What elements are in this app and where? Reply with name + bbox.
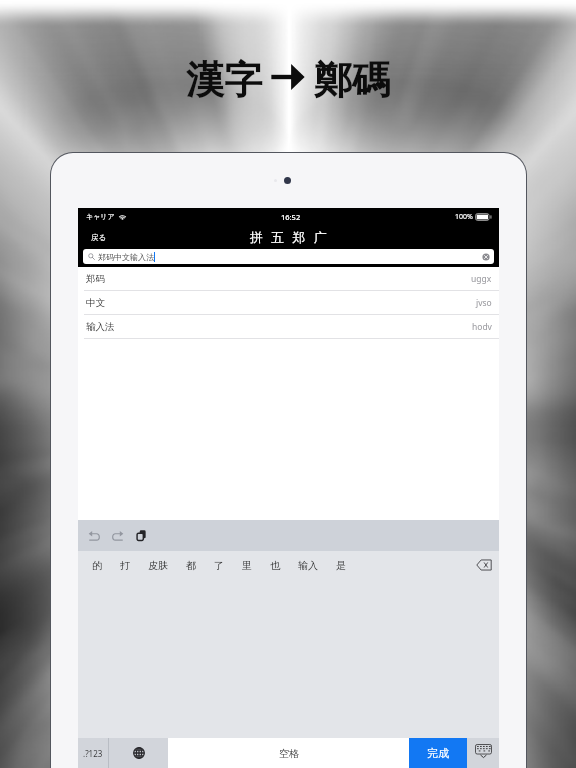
staticText: 的 [92, 559, 102, 572]
staticText: 是 [336, 559, 346, 572]
button[interactable]: 都 [177, 556, 205, 575]
button[interactable]: 完成 [409, 738, 467, 768]
button[interactable]: .?123 [78, 738, 108, 768]
button[interactable]: 空格 [168, 738, 409, 768]
staticText: 完成 [427, 746, 449, 760]
button[interactable]: 输入法 [78, 315, 499, 339]
staticText: .?123 [83, 748, 103, 759]
staticText: 中文 [86, 297, 105, 309]
staticText: 里 [242, 559, 252, 572]
staticText: uggx [471, 273, 492, 285]
staticText: 郑码 [86, 273, 105, 285]
button[interactable]: Clear text [482, 253, 490, 261]
staticText: hodv [472, 321, 492, 333]
button[interactable]: Backspace [476, 559, 492, 571]
staticText: 鄭碼 [314, 56, 390, 104]
button[interactable]: 皮肤 [139, 556, 177, 575]
staticText: 打 [120, 559, 130, 572]
staticText: 拼 五 郑 广 [250, 228, 328, 246]
staticText: キャリア [86, 212, 115, 221]
button[interactable]: 也 [261, 556, 289, 575]
button[interactable]: 中文 [78, 291, 499, 315]
staticText: 100% [455, 212, 473, 222]
staticText: 漢字 [186, 56, 262, 104]
staticText: 也 [270, 559, 280, 572]
button[interactable]: 是 [327, 556, 355, 575]
staticText: 16:52 [281, 212, 301, 222]
button[interactable]: 戻る [86, 230, 112, 245]
staticText: 都 [186, 559, 196, 572]
button[interactable]: Undo [87, 529, 101, 543]
staticText: 了 [214, 559, 224, 572]
button[interactable]: Redo [111, 529, 125, 543]
staticText: 输入法 [86, 321, 115, 333]
staticText: jvso [476, 297, 492, 309]
staticText: 输入 [298, 559, 318, 572]
button[interactable]: 里 [233, 556, 261, 575]
button[interactable]: 打 [111, 556, 139, 575]
staticText: 空格 [279, 747, 299, 760]
staticText: 戻る [91, 233, 107, 242]
button[interactable]: Hide keyboard [467, 738, 499, 768]
staticText: 郑码中文输入法 [98, 252, 154, 262]
staticText: 皮肤 [148, 559, 168, 572]
button[interactable]: Switch keyboard [109, 738, 168, 768]
button[interactable]: 的 [83, 556, 111, 575]
button[interactable]: Paste [135, 529, 148, 542]
button[interactable]: 郑码 [78, 267, 499, 291]
button[interactable]: 输入 [289, 556, 327, 575]
button[interactable]: 了 [205, 556, 233, 575]
